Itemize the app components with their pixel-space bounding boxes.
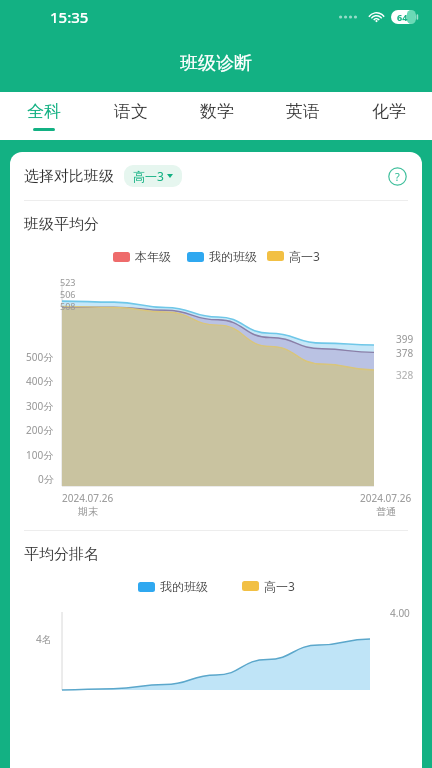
staticText: 2024.07.26 (360, 491, 412, 505)
staticText: 15:35 (50, 7, 89, 27)
staticText: 普通 (376, 505, 396, 518)
staticText: 班级平均分 (24, 215, 99, 234)
staticText: 我的班级 (160, 579, 208, 594)
staticText: 平均分排名 (24, 545, 99, 564)
staticText: 2024.07.26 (62, 491, 114, 505)
staticText: 500分 (26, 350, 54, 364)
staticText: 4.00 (390, 606, 410, 620)
staticText: 高一3 (264, 578, 295, 594)
staticText: 数学 (200, 101, 234, 122)
staticText: 我的班级 (209, 249, 257, 264)
staticText: 英语 (286, 101, 320, 122)
button[interactable]: 英语 (260, 92, 346, 140)
staticText: 语文 (114, 101, 148, 122)
staticText: 506 (60, 288, 76, 300)
staticText: 100分 (26, 448, 54, 462)
staticText: 378 (396, 346, 414, 360)
staticText: ? (395, 169, 400, 184)
button[interactable]: 数学 (174, 92, 260, 140)
staticText: 200分 (26, 423, 54, 437)
button[interactable]: 高一3 (124, 165, 182, 187)
staticText: 化学 (372, 101, 406, 122)
button[interactable]: 语文 (87, 92, 174, 140)
staticText: 选择对比班级 (24, 167, 114, 186)
staticText: 400分 (26, 374, 54, 388)
button[interactable]: 全科 (0, 92, 87, 140)
button[interactable]: 化学 (346, 92, 432, 140)
staticText: 班级诊断 (180, 52, 252, 75)
staticText: 全科 (27, 101, 61, 122)
staticText: 508 (60, 300, 76, 312)
staticText: 64 (397, 11, 408, 23)
staticText: 本年级 (135, 249, 171, 264)
staticText: 4名 (36, 632, 52, 646)
staticText: 高一3 (289, 248, 320, 264)
staticText: 399 (396, 332, 414, 346)
staticText: 300分 (26, 399, 54, 413)
staticText: 高一3 (133, 168, 164, 184)
staticText: 期末 (78, 505, 98, 518)
staticText: 328 (396, 368, 414, 382)
button[interactable]: Help (386, 165, 408, 187)
staticText: 0分 (38, 472, 54, 486)
staticText: 523 (60, 276, 76, 288)
